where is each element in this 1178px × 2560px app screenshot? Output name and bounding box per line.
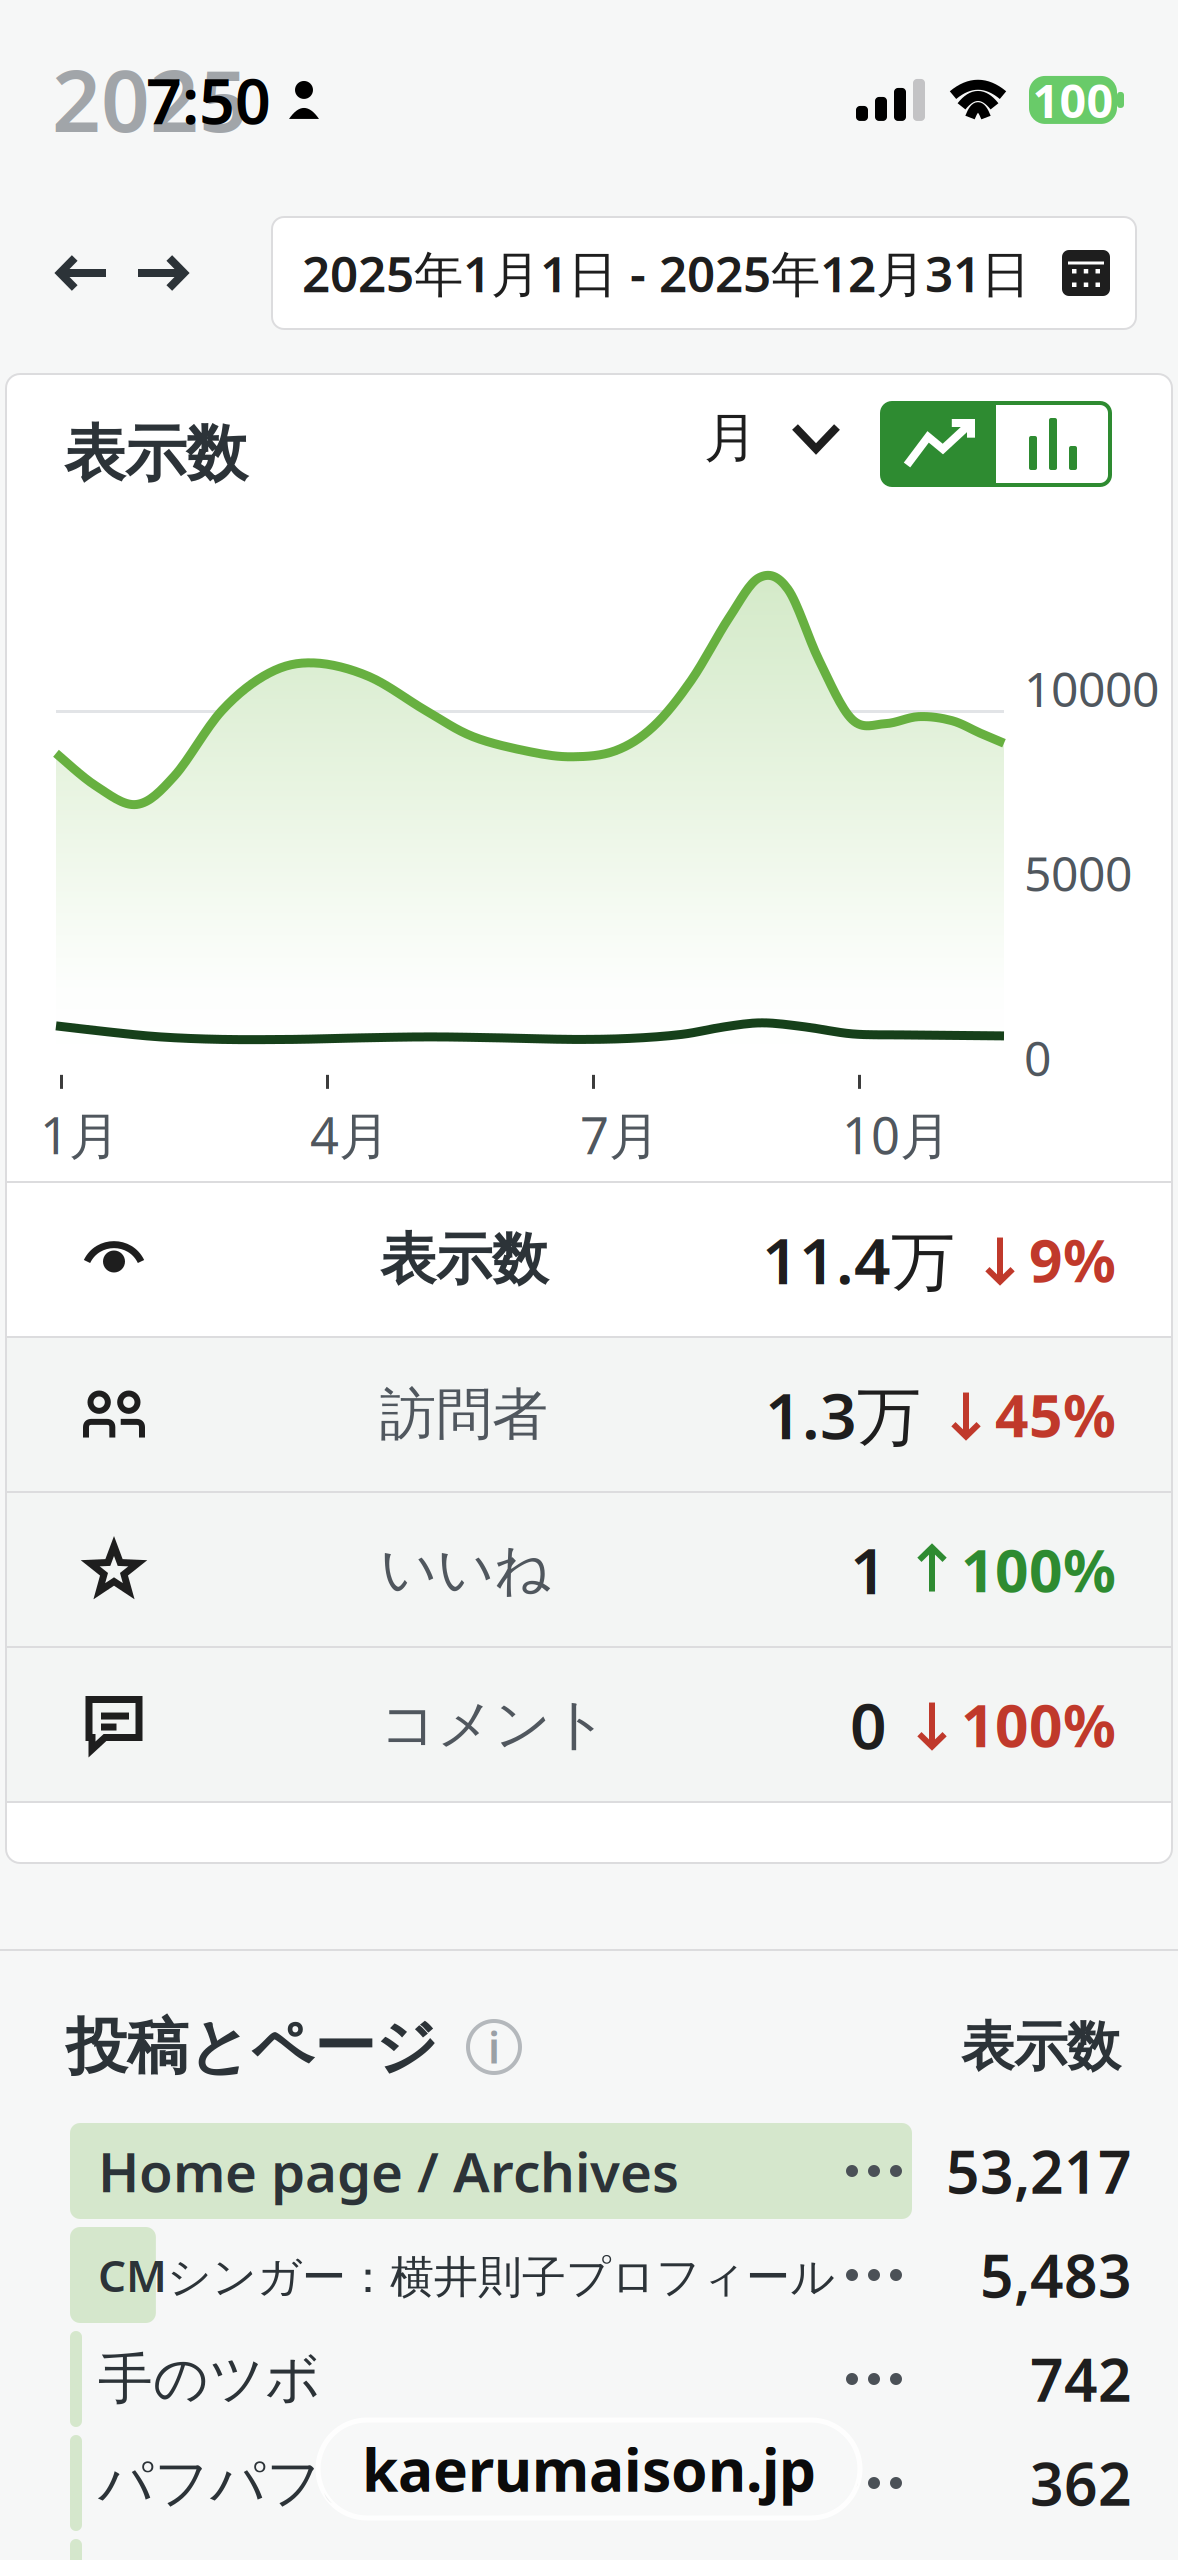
staticText: 100% bbox=[961, 1685, 1116, 1763]
staticText: 45% bbox=[995, 1375, 1116, 1453]
staticText: 1 bbox=[850, 1527, 887, 1612]
staticText: 7:50 bbox=[146, 58, 271, 141]
staticText: 月 bbox=[704, 405, 757, 471]
button[interactable]: About posts and pages bbox=[464, 2017, 524, 2077]
staticText: パフパフのポヨヨ bbox=[98, 2449, 546, 2516]
staticText: 手のツボ bbox=[98, 2345, 321, 2412]
staticText: CMシンガー：横井則子プロフィール bbox=[98, 2246, 835, 2304]
staticText: いいね bbox=[380, 1535, 551, 1604]
button[interactable]: 表示数 bbox=[6, 1183, 1172, 1336]
staticText: 11.4万 bbox=[762, 1217, 955, 1302]
staticText: 100% bbox=[961, 1530, 1116, 1608]
button[interactable]: 訪問者 bbox=[6, 1338, 1172, 1491]
staticText: 表示数 bbox=[64, 416, 247, 492]
button[interactable]: いいね bbox=[6, 1493, 1172, 1646]
staticText: 7月 bbox=[580, 1101, 660, 1168]
button[interactable]: kaerumaison.jp bbox=[318, 2420, 860, 2518]
staticText: i bbox=[488, 2019, 500, 2075]
button[interactable]: 2025年1月1日 - 2025年12月31日 bbox=[272, 217, 1136, 329]
button[interactable] bbox=[0, 2535, 1178, 2560]
staticText: 742 bbox=[1030, 2340, 1132, 2418]
staticText: 100 bbox=[1032, 69, 1113, 131]
button[interactable]: 月 bbox=[694, 387, 847, 489]
staticText: 1.3万 bbox=[765, 1372, 921, 1457]
staticText: kaerumaison.jp bbox=[362, 2430, 816, 2508]
staticText: 0 bbox=[1024, 1026, 1051, 1090]
staticText: コメント bbox=[380, 1690, 608, 1759]
button[interactable]: 手のツボ bbox=[0, 2327, 1178, 2431]
staticText: 表示数 bbox=[961, 2014, 1120, 2080]
staticText: 362 bbox=[1030, 2444, 1132, 2522]
staticText: 10000 bbox=[1024, 656, 1159, 720]
staticText: 5000 bbox=[1024, 841, 1132, 905]
staticText: 0 bbox=[850, 1682, 887, 1767]
staticText: 表示数 bbox=[380, 1225, 548, 1294]
staticText: 投稿とページ bbox=[66, 2009, 438, 2085]
staticText: 10月 bbox=[842, 1101, 951, 1168]
staticText: 訪問者 bbox=[380, 1380, 548, 1449]
button[interactable]: CMシンガー：横井則子プロフィール bbox=[0, 2223, 1178, 2327]
button[interactable]: Bar chart view bbox=[996, 403, 1110, 485]
staticText: 2025 bbox=[52, 42, 248, 156]
button[interactable]: Line chart view bbox=[882, 403, 996, 485]
staticText: 9% bbox=[1029, 1220, 1116, 1298]
button[interactable]: コメント bbox=[6, 1648, 1172, 1801]
staticText: 1月 bbox=[40, 1101, 120, 1168]
staticText: 4月 bbox=[310, 1101, 390, 1168]
button[interactable]: パフパフのポヨヨ bbox=[0, 2431, 1178, 2535]
staticText: Home page / Archives bbox=[98, 2135, 679, 2207]
staticText: 2025年1月1日 - 2025年12月31日 bbox=[302, 240, 1030, 306]
staticText: 53,217 bbox=[946, 2132, 1132, 2210]
button[interactable]: Next period bbox=[126, 224, 196, 322]
button[interactable]: Previous period bbox=[48, 224, 118, 322]
button[interactable]: Home page / Archives bbox=[0, 2119, 1178, 2223]
staticText: 5,483 bbox=[980, 2236, 1132, 2314]
